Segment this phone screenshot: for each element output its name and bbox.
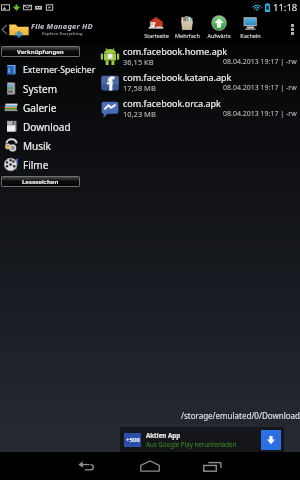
button[interactable]: com.facebook.katana.apk xyxy=(96,70,300,96)
staticText: Aufwärts xyxy=(207,32,231,39)
staticText: Aktien App xyxy=(146,431,181,439)
staticText: Mehrfach xyxy=(175,32,200,39)
button[interactable]: Musik xyxy=(0,136,96,155)
button[interactable]: Aufwärts xyxy=(204,15,234,39)
button[interactable]: com.facebook.orca.apk xyxy=(96,96,300,122)
staticText: Startseite xyxy=(144,32,169,39)
button[interactable]: Filme xyxy=(0,155,96,174)
staticText: Verknüpfungen xyxy=(17,48,64,56)
button[interactable]: System xyxy=(0,79,96,98)
button[interactable]: Externer-Speicher xyxy=(0,60,96,79)
staticText: com.facebook.home.apk xyxy=(123,45,228,57)
staticText: Download xyxy=(23,120,96,134)
button[interactable]: Mehrfach xyxy=(172,15,202,39)
staticText: Externer-Speicher xyxy=(23,64,96,76)
staticText: Explore Everything xyxy=(42,31,83,37)
staticText: 17,58 MB xyxy=(123,83,156,93)
button[interactable]: Home xyxy=(128,452,172,480)
staticText: 08.04.2013 19:17 | -rw xyxy=(223,57,297,67)
button[interactable]: Kacheln xyxy=(235,15,265,39)
button[interactable]: Verknüpfungen xyxy=(2,47,79,56)
button[interactable]: +500 xyxy=(120,427,284,452)
button[interactable]: Lesezeichen xyxy=(2,177,79,186)
staticText: System xyxy=(23,82,96,96)
staticText: Lesezeichen xyxy=(22,178,59,186)
button[interactable]: Recent apps xyxy=(190,452,234,480)
staticText: 10,23 MB xyxy=(123,109,156,119)
button[interactable]: Galerie xyxy=(0,98,96,117)
staticText: com.facebook.katana.apk xyxy=(123,71,232,83)
staticText: +500 xyxy=(126,436,140,444)
staticText: /storage/emulated/0/Download xyxy=(181,410,300,421)
staticText: 08.04.2013 19:17 | -rw xyxy=(223,109,297,119)
button[interactable]: Download xyxy=(0,117,96,136)
staticText: 36,15 KB xyxy=(123,57,154,67)
staticText: 08.04.2013 19:17 | -rw xyxy=(223,83,297,93)
staticText: 11:18 xyxy=(273,1,298,14)
button[interactable]: Back xyxy=(64,452,108,480)
staticText: Aus Google Play herunterladen xyxy=(146,440,237,448)
button[interactable]: Startseite xyxy=(141,15,171,39)
button[interactable]: com.facebook.home.apk xyxy=(96,44,300,70)
staticText: Galerie xyxy=(23,101,96,115)
button[interactable]: More options xyxy=(284,14,300,44)
staticText: Musik xyxy=(23,139,96,153)
button[interactable]: Download xyxy=(261,430,281,450)
staticText: Filme xyxy=(23,158,96,172)
staticText: File Manager HD xyxy=(31,21,93,31)
staticText: com.facebook.orca.apk xyxy=(123,97,221,109)
button[interactable]: Navigate up xyxy=(0,14,8,44)
staticText: Kacheln xyxy=(240,32,261,39)
